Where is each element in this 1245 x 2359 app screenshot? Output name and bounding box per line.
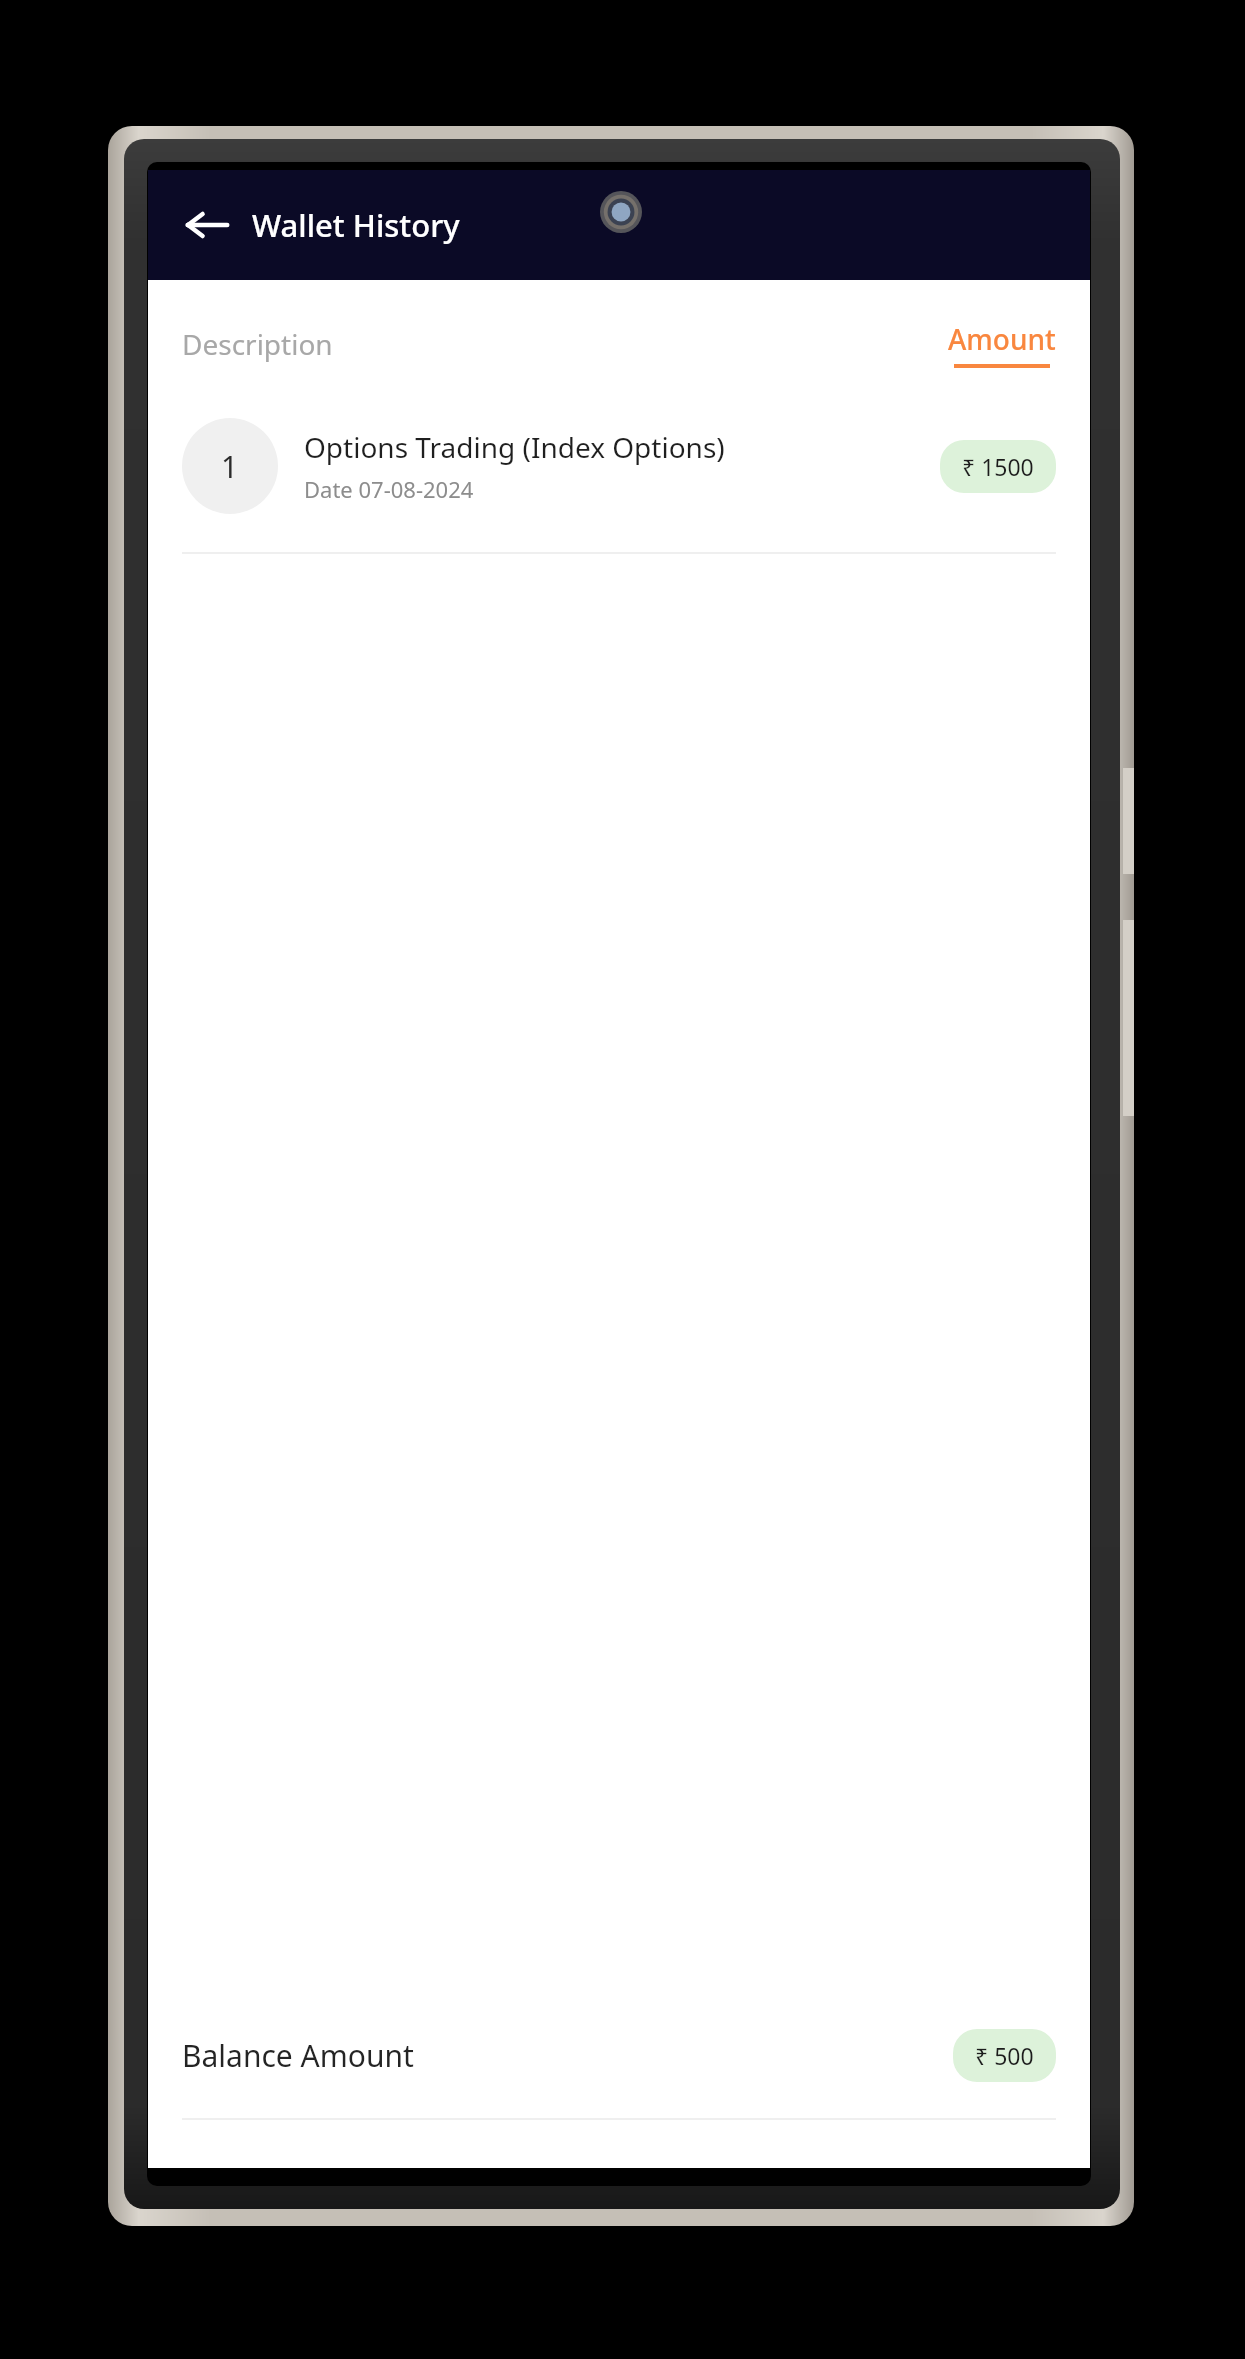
staticText: Date 07-08-2024 [304,474,474,504]
staticText: Options Trading (Index Options) [304,428,725,466]
button[interactable]: 1 [148,412,1090,520]
staticText: Balance Amount [182,2035,414,2076]
staticText: Wallet History [252,204,460,246]
staticText: 1 [221,446,239,487]
button[interactable]: Back [174,192,240,258]
staticText: ₹ 500 [975,2040,1034,2071]
staticText: Description [182,325,333,363]
staticText: Amount [948,320,1056,358]
staticText: ₹ 1500 [962,451,1034,482]
button[interactable]: Balance Amount [148,2029,1090,2082]
